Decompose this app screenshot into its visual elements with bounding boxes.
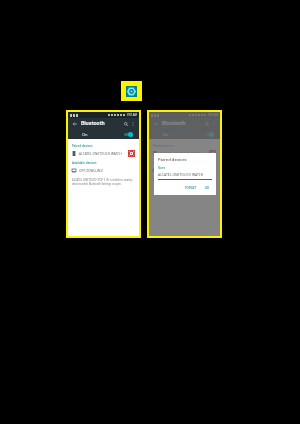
staticText: ALCATEL ONETOUCH WATCH [160,152,209,156]
button[interactable]: OK [203,185,212,191]
button[interactable]: Bluetooth settings icon [121,81,142,101]
button[interactable]: Device settings [209,150,216,157]
staticText: OPP-ZDWLLIN-() [79,169,135,173]
staticText: FORGET [185,186,197,190]
button[interactable]: More options [129,120,136,127]
staticText: On [163,132,169,137]
button[interactable]: Back [71,120,78,127]
staticText: Available devices [72,161,97,165]
staticText: Available devices [153,161,178,165]
staticText: Name [158,166,166,170]
staticText: Paired devices [153,144,174,148]
staticText: ALCATEL ONETOUCH WATCH [79,152,128,156]
staticText: OK [205,186,210,190]
staticText: ALCATEL ONETOUCH POP 3 (5) is visible to… [72,178,135,186]
button[interactable]: Back [152,120,159,127]
button[interactable]: ALCATEL ONETOUCH WATCH [68,149,139,158]
button[interactable]: ALCATEL ONETOUCH WATCH [149,149,220,158]
staticText: ALCATEL ONETOUCH WATCH [158,172,204,177]
staticText: On [82,132,88,137]
staticText: Bluetooth [162,120,186,127]
staticText: ALCATEL ONETOUCH POP 3 (5) is visible to… [153,178,216,186]
button[interactable]: FORGET [183,185,199,191]
button[interactable]: Search [203,120,210,127]
button[interactable]: OPP-ZDWLLIN-() [149,166,220,175]
staticText: 7:01 AM [127,113,137,117]
button[interactable]: OPP-ZDWLLIN-() [68,166,139,175]
button[interactable]: Search [122,120,129,127]
staticText: Bluetooth [81,120,105,127]
button[interactable]: On [149,129,220,139]
staticText: Paired devices [72,144,93,148]
staticText: Paired devices [158,157,187,163]
button[interactable]: On [68,129,139,139]
staticText: 7:01 AM [208,113,218,117]
button[interactable]: Device settings [128,150,135,157]
